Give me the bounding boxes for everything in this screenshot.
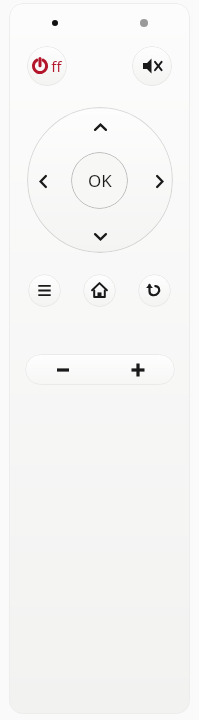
button[interactable]: OK: [71, 152, 128, 209]
button[interactable]: Menu: [28, 274, 61, 307]
staticText: OK: [88, 169, 112, 192]
button[interactable]: Home: [83, 274, 116, 307]
button[interactable]: Volume up: [100, 354, 175, 385]
button[interactable]: Up: [88, 116, 112, 138]
button[interactable]: Power off: [27, 46, 67, 86]
button[interactable]: Volume down: [25, 354, 100, 385]
button[interactable]: Right: [147, 170, 171, 192]
staticText: ff: [51, 56, 62, 76]
button[interactable]: Mute: [132, 46, 172, 86]
button[interactable]: Down: [88, 225, 112, 247]
button[interactable]: Left: [31, 170, 55, 192]
button[interactable]: Back: [138, 274, 171, 307]
